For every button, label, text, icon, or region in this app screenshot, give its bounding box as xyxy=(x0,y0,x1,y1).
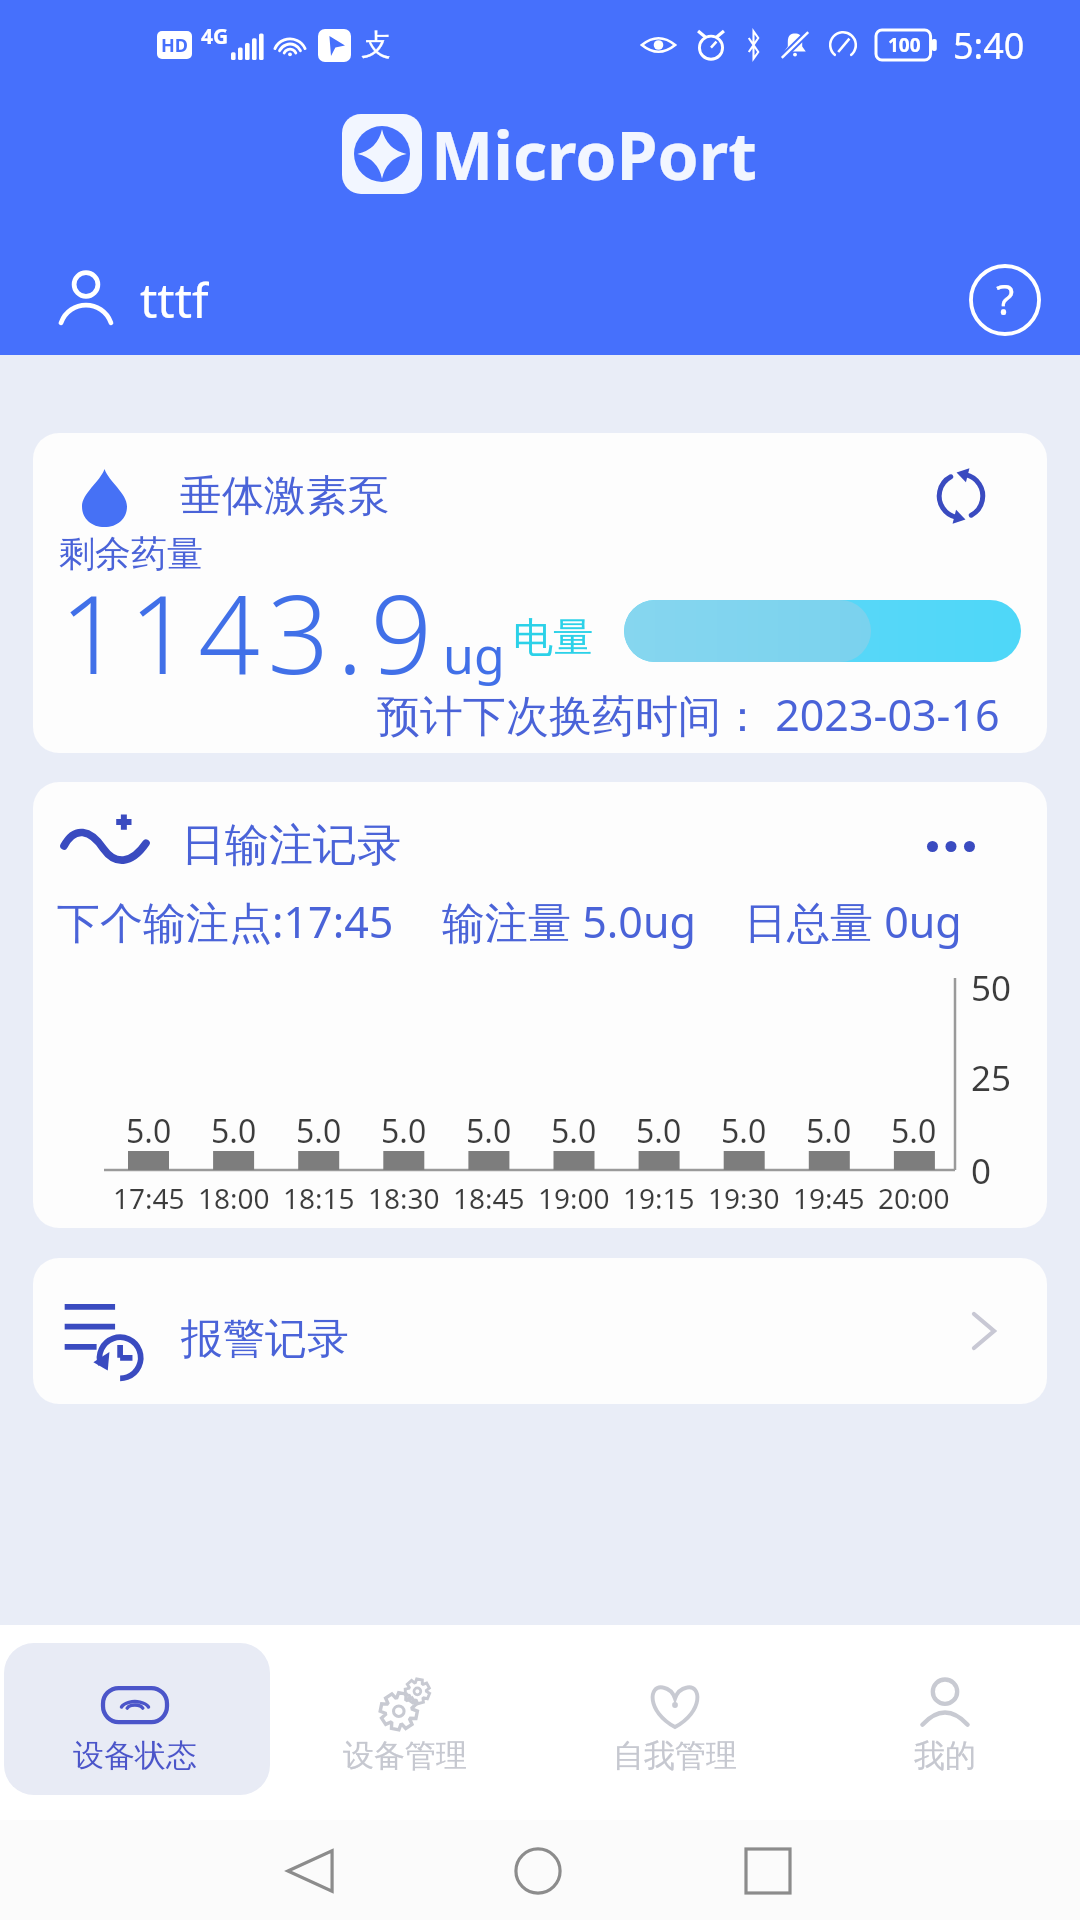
staticText: 5.0 xyxy=(211,1109,257,1153)
staticText: 下个输注点:17:45 xyxy=(57,892,394,951)
staticText: 4G xyxy=(201,22,229,51)
staticText: 25 xyxy=(971,1054,1012,1102)
staticText: 17:45 xyxy=(113,1179,185,1217)
staticText: 19:30 xyxy=(708,1179,780,1217)
staticText: 5.0 xyxy=(126,1109,172,1153)
staticText: 18:15 xyxy=(283,1179,355,1217)
staticText: 0 xyxy=(971,1147,992,1195)
staticText: 预计下次换药时间： 2023-03-16 xyxy=(377,685,1000,744)
button[interactable]: Help xyxy=(968,263,1042,337)
button[interactable]: 设备管理 xyxy=(320,1650,490,1795)
staticText: 输注量 5.0ug xyxy=(442,892,696,951)
staticText: 自我管理 xyxy=(613,1736,737,1775)
staticText: 日总量 0ug xyxy=(744,892,962,951)
staticText: 报警记录 xyxy=(181,1313,349,1366)
button[interactable]: Refresh xyxy=(928,463,994,529)
button[interactable]: 我的 xyxy=(860,1650,1030,1795)
staticText: 100 xyxy=(888,32,921,58)
staticText: 5.0 xyxy=(466,1109,512,1153)
staticText: 50 xyxy=(971,964,1012,1012)
staticText: ug xyxy=(443,621,505,689)
staticText: 5.0 xyxy=(891,1109,937,1153)
button[interactable]: 自我管理 xyxy=(590,1650,760,1795)
button[interactable]: 报警记录 xyxy=(33,1258,1047,1404)
button[interactable]: Recents xyxy=(735,1838,801,1904)
button[interactable]: 设备状态 xyxy=(50,1650,220,1795)
button[interactable]: tttf xyxy=(57,265,209,327)
staticText: 电量 xyxy=(513,612,593,662)
staticText: MicroPort xyxy=(431,109,757,199)
staticText: 剩余药量 xyxy=(59,531,203,576)
staticText: 垂体激素泵 xyxy=(180,470,390,523)
staticText: 18:00 xyxy=(198,1179,270,1217)
staticText: 18:45 xyxy=(453,1179,525,1217)
staticText: 5:40 xyxy=(953,21,1025,70)
staticText: 日输注记录 xyxy=(181,818,401,873)
staticText: HD xyxy=(161,33,188,58)
button[interactable]: More options xyxy=(915,810,987,882)
staticText: 19:15 xyxy=(623,1179,695,1217)
staticText: 我的 xyxy=(914,1736,976,1775)
staticText: 设备管理 xyxy=(343,1736,467,1775)
staticText: tttf xyxy=(140,267,209,329)
staticText: 5.0 xyxy=(721,1109,767,1153)
staticText: 19:45 xyxy=(793,1179,865,1217)
button[interactable]: Home xyxy=(505,1838,571,1904)
staticText: 5.0 xyxy=(296,1109,342,1153)
staticText: 5.0 xyxy=(806,1109,852,1153)
button[interactable]: 日输注记录 xyxy=(33,782,1047,1228)
button[interactable]: Back xyxy=(277,1838,343,1904)
staticText: 5.0 xyxy=(636,1109,682,1153)
staticText: 19:00 xyxy=(538,1179,610,1217)
button[interactable]: 垂体激素泵 xyxy=(33,433,1047,753)
staticText: 18:30 xyxy=(368,1179,440,1217)
staticText: 5.0 xyxy=(381,1109,427,1153)
staticText: 20:00 xyxy=(878,1179,950,1217)
staticText: 1143.9 xyxy=(60,559,440,706)
staticText: 攴 xyxy=(361,26,391,64)
staticText: ? xyxy=(996,270,1015,327)
staticText: 5.0 xyxy=(551,1109,597,1153)
staticText: 设备状态 xyxy=(73,1736,197,1775)
